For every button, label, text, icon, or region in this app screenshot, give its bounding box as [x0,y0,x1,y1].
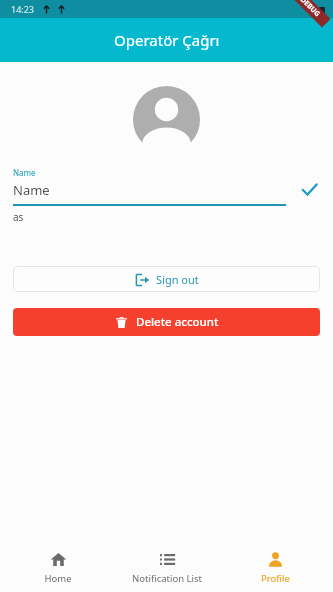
staticText: Sign out [156,272,199,287]
staticText: as [13,210,24,224]
button[interactable]: Delete account [13,308,320,336]
button[interactable]: Confirm name [298,178,320,200]
staticText: Notification List [132,572,202,585]
staticText: Home [44,572,72,585]
staticText: 14:23 [11,3,35,15]
staticText: Profile [261,572,290,585]
button[interactable]: Profile [225,551,325,585]
button[interactable]: Home [8,551,108,585]
staticText: Name [13,167,36,178]
staticText: Delete account [136,314,219,330]
staticText: DEBUG [298,0,323,20]
button[interactable]: Sign out [13,266,320,292]
staticText: Name [13,181,50,199]
staticText: Operatör Çağrı [114,30,220,50]
button[interactable]: Notification List [117,551,217,585]
